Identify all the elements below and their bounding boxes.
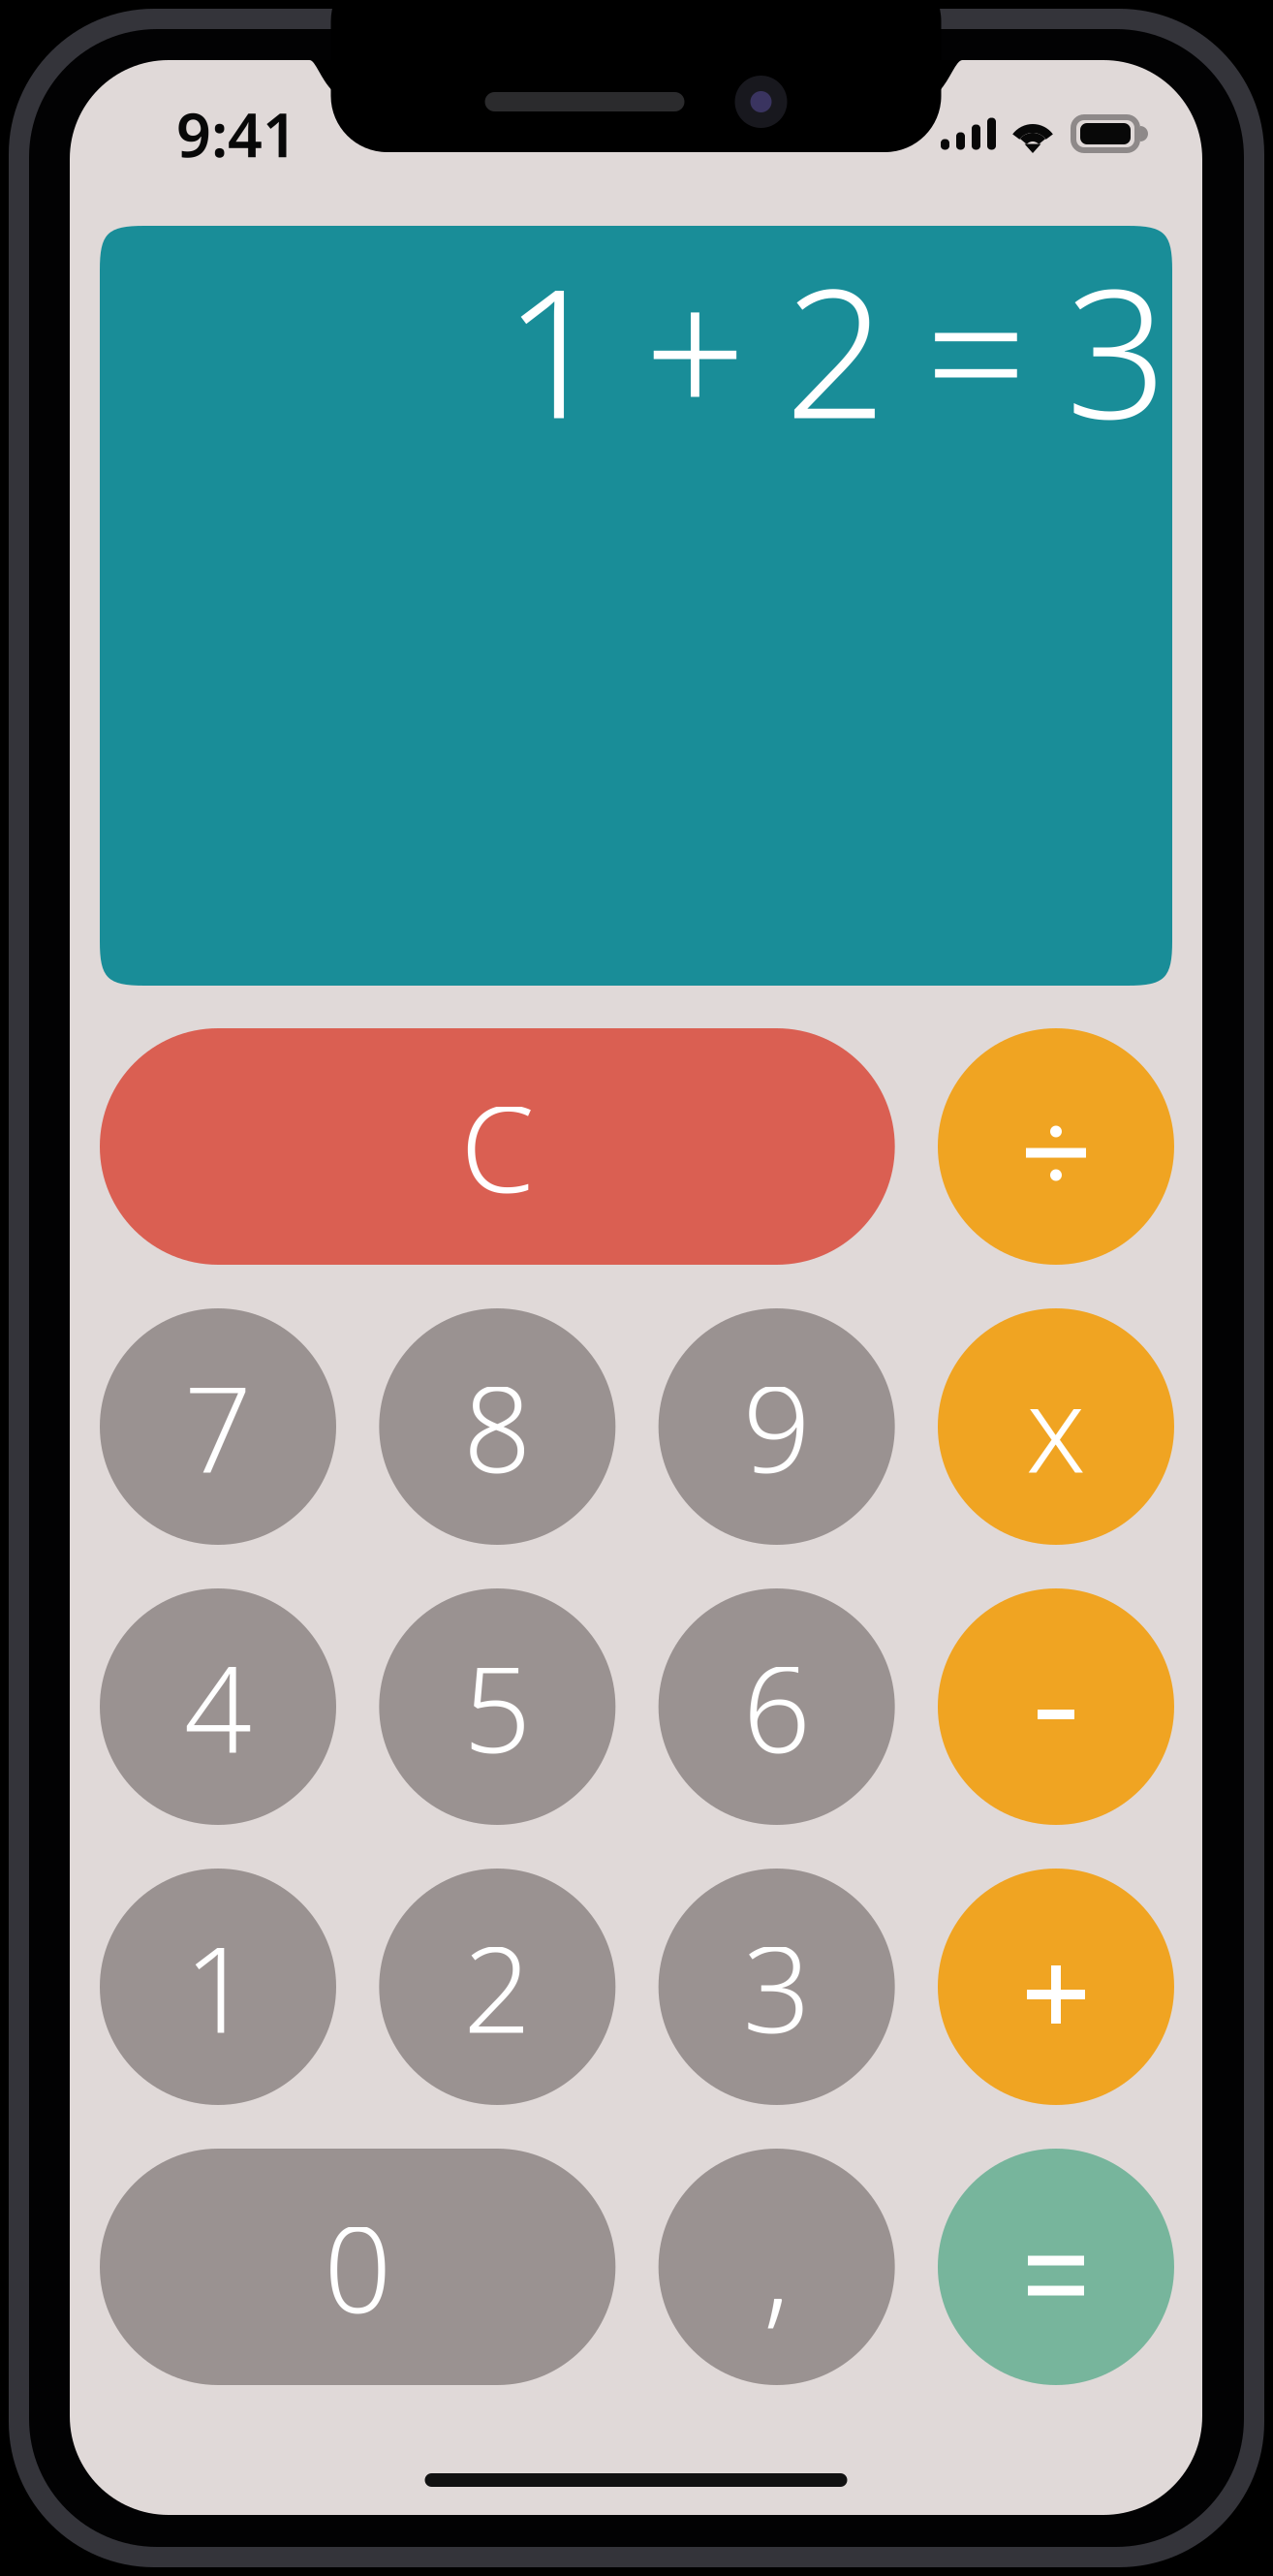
button[interactable]: Divide — [938, 1028, 1174, 1265]
button[interactable]: 7 — [100, 1308, 336, 1545]
button[interactable]: 8 — [379, 1308, 615, 1545]
button[interactable]: 6 — [658, 1588, 895, 1825]
button[interactable]: C — [100, 1028, 895, 1265]
staticText: 4 — [184, 1628, 252, 1786]
staticText: 0 — [324, 2188, 392, 2346]
staticText: 2 — [463, 1908, 531, 2066]
staticText: C — [460, 1068, 534, 1225]
staticText: 8 — [463, 1348, 531, 1506]
button[interactable]: 9 — [658, 1308, 895, 1545]
staticText: 7 — [184, 1348, 252, 1506]
button[interactable]: Plus — [938, 1869, 1174, 2105]
button[interactable]: 3 — [658, 1869, 895, 2105]
staticText: 1 — [184, 1908, 252, 2066]
staticText: 9:41 — [176, 93, 297, 174]
button[interactable]: 2 — [379, 1869, 615, 2105]
staticText: , — [763, 2188, 790, 2346]
staticText: 6 — [743, 1628, 811, 1786]
staticText: 5 — [463, 1628, 531, 1786]
button[interactable]: 5 — [379, 1588, 615, 1825]
button[interactable]: Equals — [938, 2149, 1174, 2385]
button[interactable]: 0 — [100, 2149, 615, 2385]
button[interactable]: , — [658, 2149, 895, 2385]
button[interactable]: 4 — [100, 1588, 336, 1825]
staticText: 1 + 2 = 3 — [504, 231, 1167, 467]
staticText: 3 — [743, 1908, 811, 2066]
button[interactable]: x — [938, 1308, 1174, 1545]
staticText: x — [1026, 1348, 1086, 1506]
button[interactable]: 1 — [100, 1869, 336, 2105]
staticText: 9 — [743, 1348, 811, 1506]
button[interactable]: Minus — [938, 1588, 1174, 1825]
